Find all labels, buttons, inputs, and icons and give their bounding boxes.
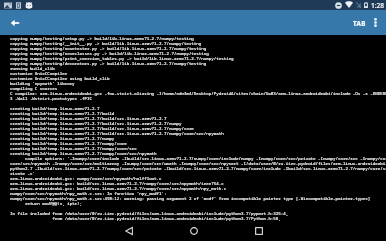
staticText: customize UnixCCompiler xyxy=(10,71,68,76)
staticText: copying numpy/testing/nosetester.py -> b… xyxy=(10,46,207,51)
staticText: creating build/temp.linux-armv7l-2.7/num… xyxy=(10,146,137,151)
staticText: 1:28 xyxy=(371,1,385,10)
staticText: creating build/temp.linux-armv7l-2.7/num… xyxy=(10,136,115,141)
staticText: creating build/temp.linux-armv7l-2.7/bui… xyxy=(10,116,167,121)
staticText: creating build/temp.linux-armv7l-2.7/bui… xyxy=(10,126,194,131)
staticText: copying numpy/testing/print_coercion_tab… xyxy=(10,56,234,61)
staticText: arm-linux-androideabi-gcc: numpy/core/sr… xyxy=(10,176,162,181)
button[interactable]: TAB xyxy=(349,15,370,31)
staticText: arm-linux-androideabi-gcc: build/src.lin… xyxy=(10,181,224,186)
staticText: python2.7 -Ibuild/src.linux-armv7l-2.7/n… xyxy=(10,166,386,171)
button[interactable]: Home xyxy=(161,221,226,241)
staticText: running build_clib xyxy=(10,66,55,71)
staticText: arm-linux-androideabi-gcc: build/src.lin… xyxy=(10,186,227,191)
button[interactable]: More options xyxy=(368,10,382,35)
staticText: creating build/temp.linux-armv7l-2.7/num… xyxy=(10,141,127,146)
staticText: creating build/temp.linux-armv7l-2.7/bui… xyxy=(10,111,115,116)
staticText: TAB xyxy=(353,19,366,27)
staticText: copying numpy/testing/__init__.py -> bui… xyxy=(10,41,202,46)
staticText: C compiler: arm-linux-androideabi-gcc -f… xyxy=(10,91,386,96)
staticText: numpy/core/src/npymath/npy_math.c.src:49… xyxy=(10,196,371,201)
staticText: return modf@@(x, iptr); xyxy=(10,201,83,206)
staticText: 3 -Wall -Wstrict-prototypes -fPIC xyxy=(10,96,92,101)
button[interactable]: Recent apps xyxy=(226,221,291,241)
staticText: numpy/core/src/npymath/npy_math.c.src: I… xyxy=(10,191,167,196)
staticText: core/src/npymath -Inumpy/core/src/multia… xyxy=(10,161,386,166)
staticText: rivate -c' xyxy=(10,171,35,176)
staticText: customize UnixCCompiler using build_clib xyxy=(10,76,110,81)
staticText: copying numpy/testing/setup.py -> build/… xyxy=(10,36,194,41)
staticText: creating build/temp.linux-armv7l-2.7 xyxy=(10,106,100,111)
staticText: compiling C sources xyxy=(10,86,58,91)
button[interactable]: Navigate back xyxy=(0,10,29,35)
staticText: creating build/temp.linux-armv7l-2.7/bui… xyxy=(10,121,182,126)
button[interactable]: Back xyxy=(96,221,161,241)
staticText: In file included from /data/user/0/ru.ii… xyxy=(10,211,289,216)
staticText: copying numpy/testing/decorators.py -> b… xyxy=(10,61,207,66)
staticText: compile options: '-Inumpy/core/include -… xyxy=(10,156,386,161)
staticText: creating build/temp.linux-armv7l-2.7/num… xyxy=(10,151,157,156)
staticText: from /data/user/0/ru.iiec.pydroid/files/… xyxy=(10,216,281,221)
staticText: copying numpy/testing/noseclasses.py -> … xyxy=(10,51,209,56)
staticText: building 'npymath' library xyxy=(10,81,75,86)
staticText: creating build/temp.linux-armv7l-2.7/bui… xyxy=(10,131,224,136)
